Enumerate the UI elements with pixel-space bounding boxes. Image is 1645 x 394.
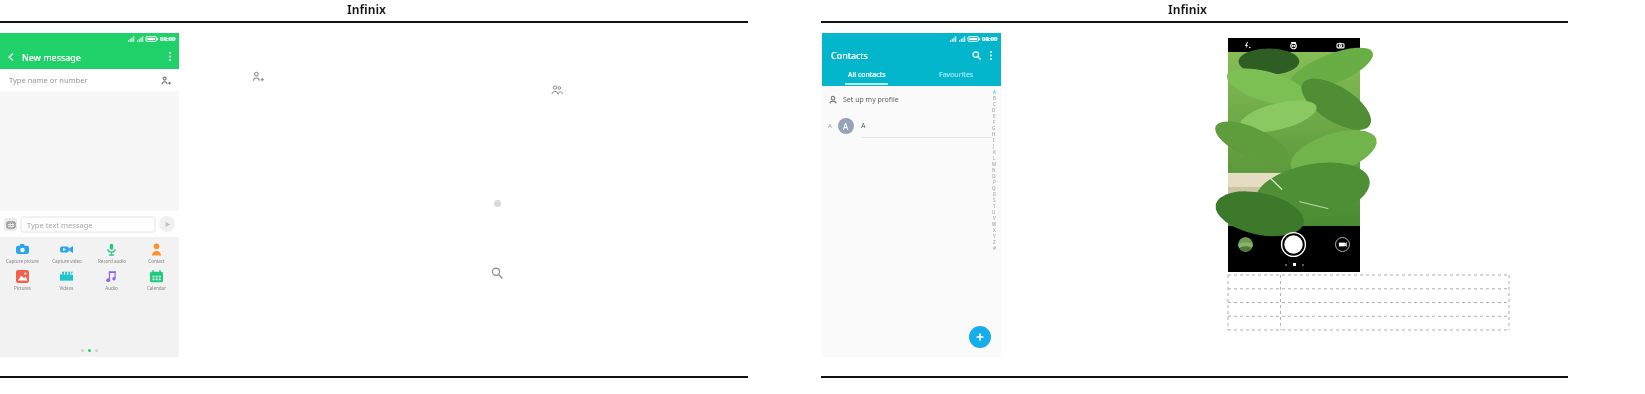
staticText: Z	[993, 239, 996, 245]
staticText: M	[992, 161, 997, 167]
button[interactable]: Contact	[134, 242, 179, 265]
staticText: Audio	[105, 285, 118, 291]
staticText: L	[993, 155, 996, 161]
staticText: A	[843, 121, 849, 132]
button[interactable]: Calendar	[134, 269, 179, 292]
staticText: C	[993, 101, 996, 107]
staticText: G	[992, 125, 996, 131]
staticText: B	[993, 95, 996, 101]
button[interactable]: HDR	[1288, 40, 1299, 51]
button[interactable]: More options	[161, 44, 179, 69]
staticText: A	[993, 89, 996, 95]
staticText: Videos	[59, 285, 74, 291]
staticText: D	[992, 107, 996, 113]
staticText: Contact	[148, 258, 165, 264]
button[interactable]: Gallery	[1238, 237, 1253, 252]
staticText: V	[993, 215, 996, 221]
staticText: Contacts	[831, 49, 868, 61]
button[interactable]: Shutter	[1281, 232, 1306, 257]
staticText: 08:00	[982, 35, 998, 43]
staticText: Y	[993, 233, 996, 239]
staticText: #	[993, 245, 996, 251]
staticText: A	[822, 122, 838, 130]
button[interactable]: Pictures	[0, 269, 44, 292]
staticText: X	[993, 227, 996, 233]
button[interactable]: Send	[159, 216, 175, 232]
button[interactable]: Video mode	[1335, 237, 1350, 252]
button[interactable]: Set up my profile	[822, 91, 1001, 109]
staticText: J	[993, 143, 995, 149]
button[interactable]: Videos	[44, 269, 89, 292]
staticText: N	[992, 167, 996, 173]
staticText: O	[992, 173, 996, 179]
button[interactable]: Add contact	[969, 326, 991, 348]
staticText: Infinix	[347, 1, 387, 17]
button[interactable]: Search	[968, 47, 984, 63]
button[interactable]: Capture video	[44, 242, 89, 265]
button[interactable]: Type text message	[21, 217, 155, 232]
button[interactable]: Keyboard	[4, 218, 17, 231]
staticText: A	[861, 121, 866, 131]
button[interactable]: Type name or number	[0, 69, 179, 91]
button[interactable]: Capture picture	[0, 242, 44, 265]
button[interactable]: Favourites	[911, 66, 1001, 83]
button[interactable]: All contacts	[822, 66, 911, 83]
staticText: Set up my profile	[843, 95, 899, 105]
staticText: R	[993, 191, 996, 197]
button[interactable]: Record audio	[89, 242, 134, 265]
staticText: Pictures	[14, 285, 31, 291]
staticText: Q	[992, 185, 996, 191]
staticText: W	[992, 221, 997, 227]
staticText: H	[992, 131, 996, 137]
staticText: Capture video	[52, 258, 82, 264]
staticText: U	[992, 209, 996, 215]
staticText: I	[993, 137, 995, 143]
staticText: New message	[22, 51, 81, 63]
staticText: S	[993, 197, 996, 203]
staticText: P	[993, 179, 996, 185]
button[interactable]: More options	[984, 48, 998, 62]
staticText: All contacts	[848, 70, 886, 80]
button[interactable]: A	[822, 115, 1001, 137]
button[interactable]: Flash auto	[1242, 40, 1253, 51]
button[interactable]: Switch camera	[1335, 40, 1346, 51]
staticText: K	[993, 149, 996, 155]
button[interactable]: Audio	[89, 269, 134, 292]
staticText: Calendar	[147, 285, 166, 291]
staticText: 08:00	[160, 35, 176, 43]
staticText: Type text message	[27, 220, 93, 230]
staticText: Favourites	[939, 70, 974, 80]
staticText: Capture picture	[6, 258, 39, 264]
button[interactable]: Back	[0, 44, 22, 69]
staticText: E	[993, 113, 996, 119]
staticText: F	[993, 119, 996, 125]
staticText: Infinix	[1168, 1, 1208, 17]
staticText: Record audio	[98, 258, 126, 264]
button[interactable]: Add recipient	[159, 74, 172, 87]
staticText: Type name or number	[9, 75, 88, 85]
staticText: T	[993, 203, 996, 209]
